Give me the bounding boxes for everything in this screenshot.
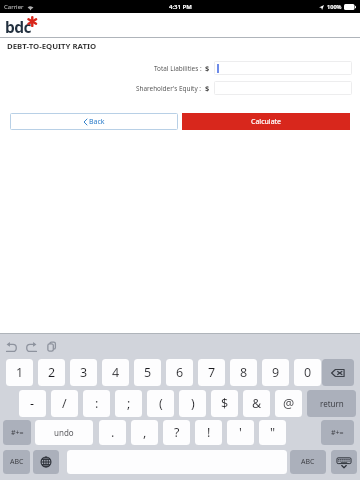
staticText: #+= — [11, 428, 24, 438]
staticText: ( — [159, 395, 163, 412]
staticText: ? — [174, 424, 180, 441]
staticText: 7 — [208, 364, 216, 381]
staticText: - — [30, 395, 35, 412]
staticText: ) — [191, 395, 195, 412]
button[interactable]: Back — [10, 113, 178, 130]
button[interactable]: ; — [115, 390, 142, 417]
staticText: 6 — [176, 364, 184, 381]
staticText: , — [143, 424, 147, 441]
button[interactable]: ABC — [290, 450, 326, 474]
button[interactable]: . — [99, 420, 126, 445]
staticText: 2 — [48, 364, 56, 381]
staticText: Calculate — [251, 117, 282, 127]
button[interactable]: 1 — [6, 359, 33, 386]
button[interactable]: $ — [211, 390, 238, 417]
button[interactable]: : — [83, 390, 110, 417]
button[interactable]: ABC — [3, 450, 30, 474]
staticText: 9 — [272, 364, 280, 381]
staticText: bdc — [5, 16, 31, 37]
button[interactable]: Undo — [5, 340, 18, 353]
staticText: 3 — [80, 364, 88, 381]
button[interactable] — [214, 81, 352, 95]
staticText: Back — [89, 117, 105, 127]
button[interactable]: 0 — [294, 359, 321, 386]
staticText: $ — [221, 395, 229, 412]
staticText: DEBT-TO-EQUITY RATIO — [7, 41, 97, 52]
button[interactable]: ' — [227, 420, 254, 445]
button[interactable]: - — [19, 390, 46, 417]
staticText: undo — [54, 427, 74, 438]
staticText: ; — [127, 395, 131, 412]
button[interactable]: Switch keyboard — [33, 450, 59, 474]
staticText: return — [320, 398, 344, 409]
staticText: 4:31 PM — [169, 3, 192, 11]
button[interactable]: / — [51, 390, 78, 417]
button[interactable]: 7 — [198, 359, 225, 386]
button[interactable]: @ — [275, 390, 302, 417]
button[interactable]: 3 — [70, 359, 97, 386]
staticText: / — [62, 395, 67, 412]
button[interactable]: #+= — [3, 420, 31, 445]
staticText: Shareholder's Equity : — [136, 84, 202, 93]
staticText: ' — [239, 424, 242, 441]
button[interactable]: 6 — [166, 359, 193, 386]
staticText: 8 — [240, 364, 248, 381]
staticText: 100% — [327, 3, 342, 11]
button[interactable]: Backspace — [322, 359, 354, 386]
staticText: ABC — [301, 457, 315, 467]
button[interactable]: , — [131, 420, 158, 445]
staticText: @ — [283, 395, 295, 412]
button[interactable]: undo — [35, 420, 93, 445]
button[interactable]: Hide keyboard — [331, 450, 357, 474]
button[interactable]: Calculate — [182, 113, 350, 130]
button[interactable]: ! — [195, 420, 222, 445]
button[interactable]: & — [243, 390, 270, 417]
staticText: . — [111, 424, 115, 441]
button[interactable]: ) — [179, 390, 206, 417]
button[interactable]: ? — [163, 420, 190, 445]
button[interactable]: #+= — [321, 420, 354, 445]
button[interactable]: return — [307, 390, 356, 417]
staticText: $ — [205, 63, 210, 73]
staticText: 0 — [304, 364, 312, 381]
button[interactable] — [214, 61, 352, 75]
button[interactable]: Paste — [45, 340, 58, 353]
staticText: ! — [207, 424, 211, 441]
staticText: 5 — [144, 364, 152, 381]
button[interactable]: Redo — [25, 340, 38, 353]
staticText: Carrier — [4, 3, 24, 11]
button[interactable]: 8 — [230, 359, 257, 386]
button[interactable]: 2 — [38, 359, 65, 386]
button[interactable]: ( — [147, 390, 174, 417]
button[interactable]: 4 — [102, 359, 129, 386]
staticText: 1 — [16, 364, 24, 381]
button[interactable]: " — [259, 420, 286, 445]
staticText: " — [270, 424, 276, 441]
button[interactable]: 5 — [134, 359, 161, 386]
staticText: & — [252, 395, 262, 412]
staticText: 4 — [112, 364, 120, 381]
button[interactable]: 9 — [262, 359, 289, 386]
staticText: Total Liabilities : — [154, 64, 202, 73]
staticText: ABC — [10, 457, 24, 467]
staticText: #+= — [331, 428, 344, 438]
staticText: $ — [205, 83, 210, 93]
staticText: : — [95, 395, 99, 412]
